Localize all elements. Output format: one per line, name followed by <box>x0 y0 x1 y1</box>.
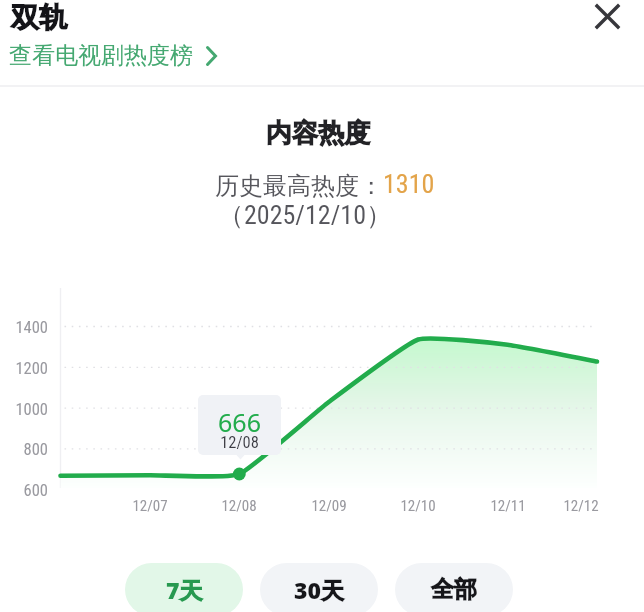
staticText: 全部 <box>431 575 477 604</box>
staticText: 12/11 <box>473 497 543 515</box>
staticText: 12/08 <box>198 433 281 452</box>
button[interactable]: 全部 <box>395 563 513 612</box>
staticText: 30天 <box>294 574 344 605</box>
staticText: 12/07 <box>115 497 185 515</box>
staticText: 666 <box>198 405 281 439</box>
staticText: 1400 <box>0 318 48 337</box>
staticText: 查看电视剧热度榜 <box>9 41 193 70</box>
staticText: 600 <box>0 481 48 500</box>
staticText: 7天 <box>166 574 203 605</box>
staticText: 1310 <box>383 169 435 199</box>
staticText: 12/12 <box>546 497 616 515</box>
button[interactable]: 30天 <box>260 563 378 612</box>
staticText: 1000 <box>0 400 48 419</box>
staticText: 12/10 <box>383 497 453 515</box>
staticText: （2025/12/10） <box>0 199 627 232</box>
staticText: 1200 <box>0 359 48 378</box>
staticText: 800 <box>0 440 48 459</box>
staticText: 历史最高热度： <box>215 171 383 201</box>
button[interactable]: Close <box>592 1 623 32</box>
staticText: 内容热度 <box>0 117 640 150</box>
staticText: 12/09 <box>294 497 364 515</box>
staticText: 12/08 <box>204 497 274 515</box>
button[interactable]: 双轨 <box>11 0 67 35</box>
button[interactable]: 查看电视剧热度榜 <box>9 41 217 70</box>
button[interactable]: 7天 <box>125 563 243 612</box>
staticText: 双轨 <box>11 0 67 35</box>
